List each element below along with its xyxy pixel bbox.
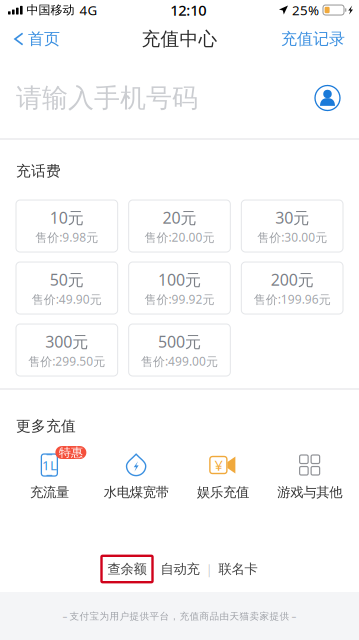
staticText: 25% xyxy=(292,1,319,19)
staticText: 售价:299.50元 xyxy=(28,353,105,369)
staticText: 联名卡 xyxy=(218,561,257,577)
button[interactable]: 20元 xyxy=(129,200,230,252)
staticText: ¥ xyxy=(214,455,222,475)
staticText: 充话费 xyxy=(16,162,61,180)
staticText: 请输入手机号码 xyxy=(16,82,198,114)
button[interactable]: 联名卡 xyxy=(212,556,257,582)
button[interactable]: 10元 xyxy=(16,200,118,252)
staticText: 充流量 xyxy=(30,484,69,500)
button[interactable]: ¥ xyxy=(179,453,266,500)
staticText: 20元 xyxy=(162,207,196,228)
staticText: 水电煤宽带 xyxy=(104,484,169,500)
staticText: 售价:30.00元 xyxy=(257,229,327,245)
button[interactable]: 游戏与其他 xyxy=(266,453,353,500)
button[interactable]: 查余额 xyxy=(101,556,152,582)
button[interactable]: 300元 xyxy=(16,324,118,376)
staticText: 特惠 xyxy=(59,445,83,460)
staticText: 100元 xyxy=(158,269,201,290)
staticText: 200元 xyxy=(271,269,314,290)
staticText: 500元 xyxy=(158,331,201,352)
staticText: 中国移动 xyxy=(27,3,75,17)
staticText: 娱乐充值 xyxy=(197,484,249,500)
staticText: 4G xyxy=(80,1,98,19)
staticText: – 支付宝为用户提供平台，充值商品由天猫卖家提供 – xyxy=(62,610,296,622)
button[interactable]: 首页 xyxy=(0,24,70,54)
button[interactable]: 30元 xyxy=(241,200,343,252)
button[interactable]: 50元 xyxy=(16,262,118,314)
staticText: 30元 xyxy=(275,207,309,228)
staticText: 游戏与其他 xyxy=(277,484,342,500)
staticText: 售价:499.00元 xyxy=(141,353,218,369)
button[interactable]: 100元 xyxy=(129,262,230,314)
button[interactable]: 充值记录 xyxy=(271,24,359,54)
staticText: 自动充 xyxy=(160,561,199,577)
staticText: 10元 xyxy=(50,207,84,228)
staticText: 售价:20.00元 xyxy=(144,229,214,245)
staticText: 售价:99.92元 xyxy=(144,291,214,307)
button[interactable]: 选择联系人 xyxy=(308,78,347,117)
staticText: | xyxy=(205,560,212,578)
button[interactable]: 200元 xyxy=(241,262,343,314)
button[interactable]: 自动充 xyxy=(152,556,205,582)
button[interactable]: 1L xyxy=(6,453,93,500)
staticText: 50元 xyxy=(50,269,84,290)
staticText: 售价:9.98元 xyxy=(35,229,98,245)
staticText: 12:10 xyxy=(170,0,206,20)
staticText: 300元 xyxy=(45,331,88,352)
staticText: 1L xyxy=(42,456,57,474)
staticText: 更多充值 xyxy=(16,417,76,435)
staticText: 售价:49.90元 xyxy=(32,291,102,307)
staticText: 首页 xyxy=(28,29,60,49)
staticText: 查余额 xyxy=(107,561,146,577)
button[interactable]: 500元 xyxy=(129,324,230,376)
staticText: 充值记录 xyxy=(281,29,345,49)
staticText: 充值中心 xyxy=(141,27,217,50)
button[interactable]: 水电煤宽带 xyxy=(93,453,180,500)
staticText: 售价:199.96元 xyxy=(254,291,331,307)
